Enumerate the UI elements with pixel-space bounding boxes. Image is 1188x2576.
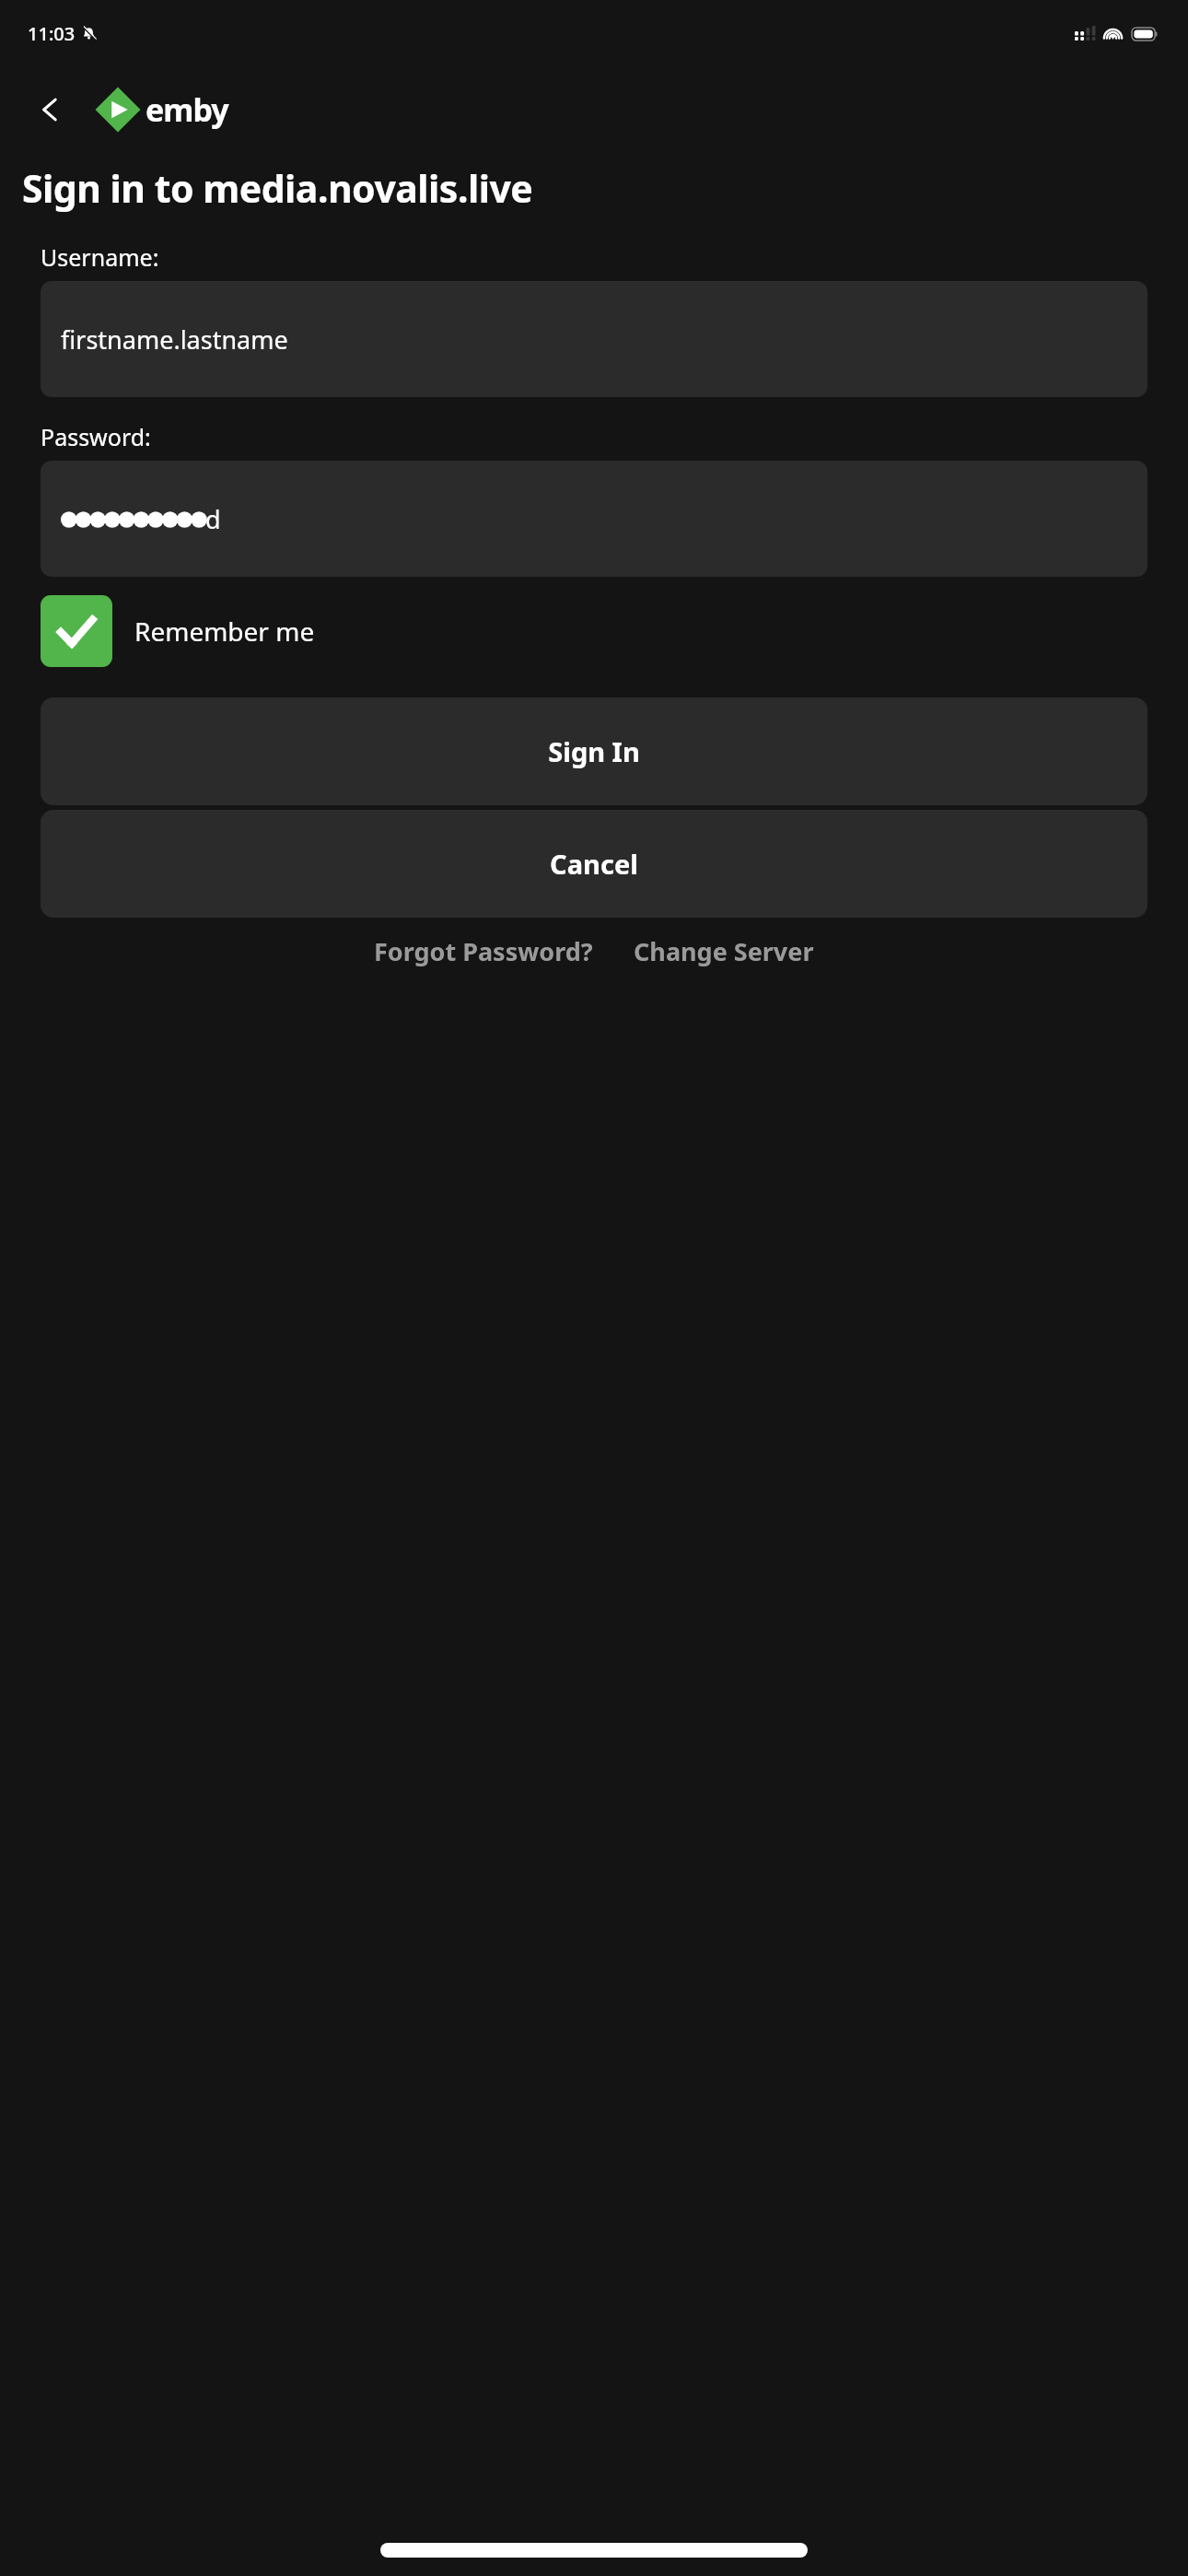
button[interactable]: Sign In: [41, 697, 1147, 805]
button[interactable]: Cancel: [41, 810, 1147, 918]
staticText: emby: [146, 88, 228, 131]
staticText: Cancel: [550, 846, 638, 882]
button[interactable]: firstname.lastname: [41, 281, 1147, 397]
staticText: 11:03: [28, 21, 76, 46]
button[interactable]: Back: [24, 83, 77, 136]
staticText: Username:: [41, 241, 159, 273]
staticText: Forgot Password?: [374, 934, 593, 968]
staticText: d: [205, 502, 221, 536]
staticText: firstname.lastname: [61, 322, 288, 357]
button[interactable]: Forgot Password?: [370, 929, 597, 974]
button[interactable]: Remember me: [41, 595, 315, 667]
staticText: Remember me: [134, 614, 315, 649]
staticText: Password:: [41, 421, 151, 452]
button[interactable]: Change Server: [630, 929, 818, 974]
staticText: Sign In: [548, 733, 640, 769]
staticText: Change Server: [634, 934, 814, 968]
button[interactable]: d: [41, 461, 1147, 577]
staticText: Sign in to media.novalis.live: [22, 162, 1166, 214]
